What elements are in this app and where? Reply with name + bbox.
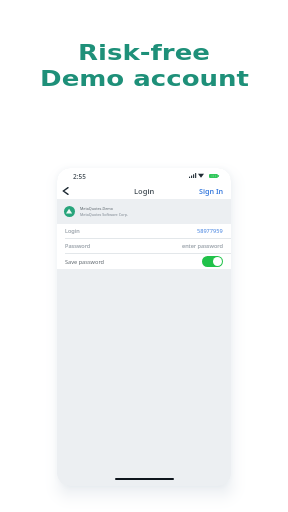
staticText: Save password: [65, 258, 105, 266]
staticText: Sign In: [199, 186, 224, 196]
staticText: 58977959: [197, 227, 223, 235]
button[interactable]: MetaQuotes-Demo: [57, 199, 231, 224]
staticText: Password: [65, 242, 91, 250]
staticText: 2:55: [73, 172, 86, 181]
staticText: MetaQuotes-Demo: [80, 206, 114, 211]
button[interactable]: Login: [57, 224, 231, 238]
button[interactable]: Password: [57, 239, 231, 253]
staticText: Login: [65, 227, 80, 235]
button[interactable]: Save password: [57, 254, 231, 269]
button[interactable]: Back: [59, 183, 75, 199]
staticText: enter password: [182, 242, 223, 250]
staticText: Login: [134, 186, 155, 196]
staticText: MetaQuotes Software Corp.: [80, 212, 128, 217]
staticText: Risk-free: [78, 41, 210, 65]
button[interactable]: Sign In: [192, 183, 231, 199]
staticText: Demo account: [40, 67, 249, 91]
